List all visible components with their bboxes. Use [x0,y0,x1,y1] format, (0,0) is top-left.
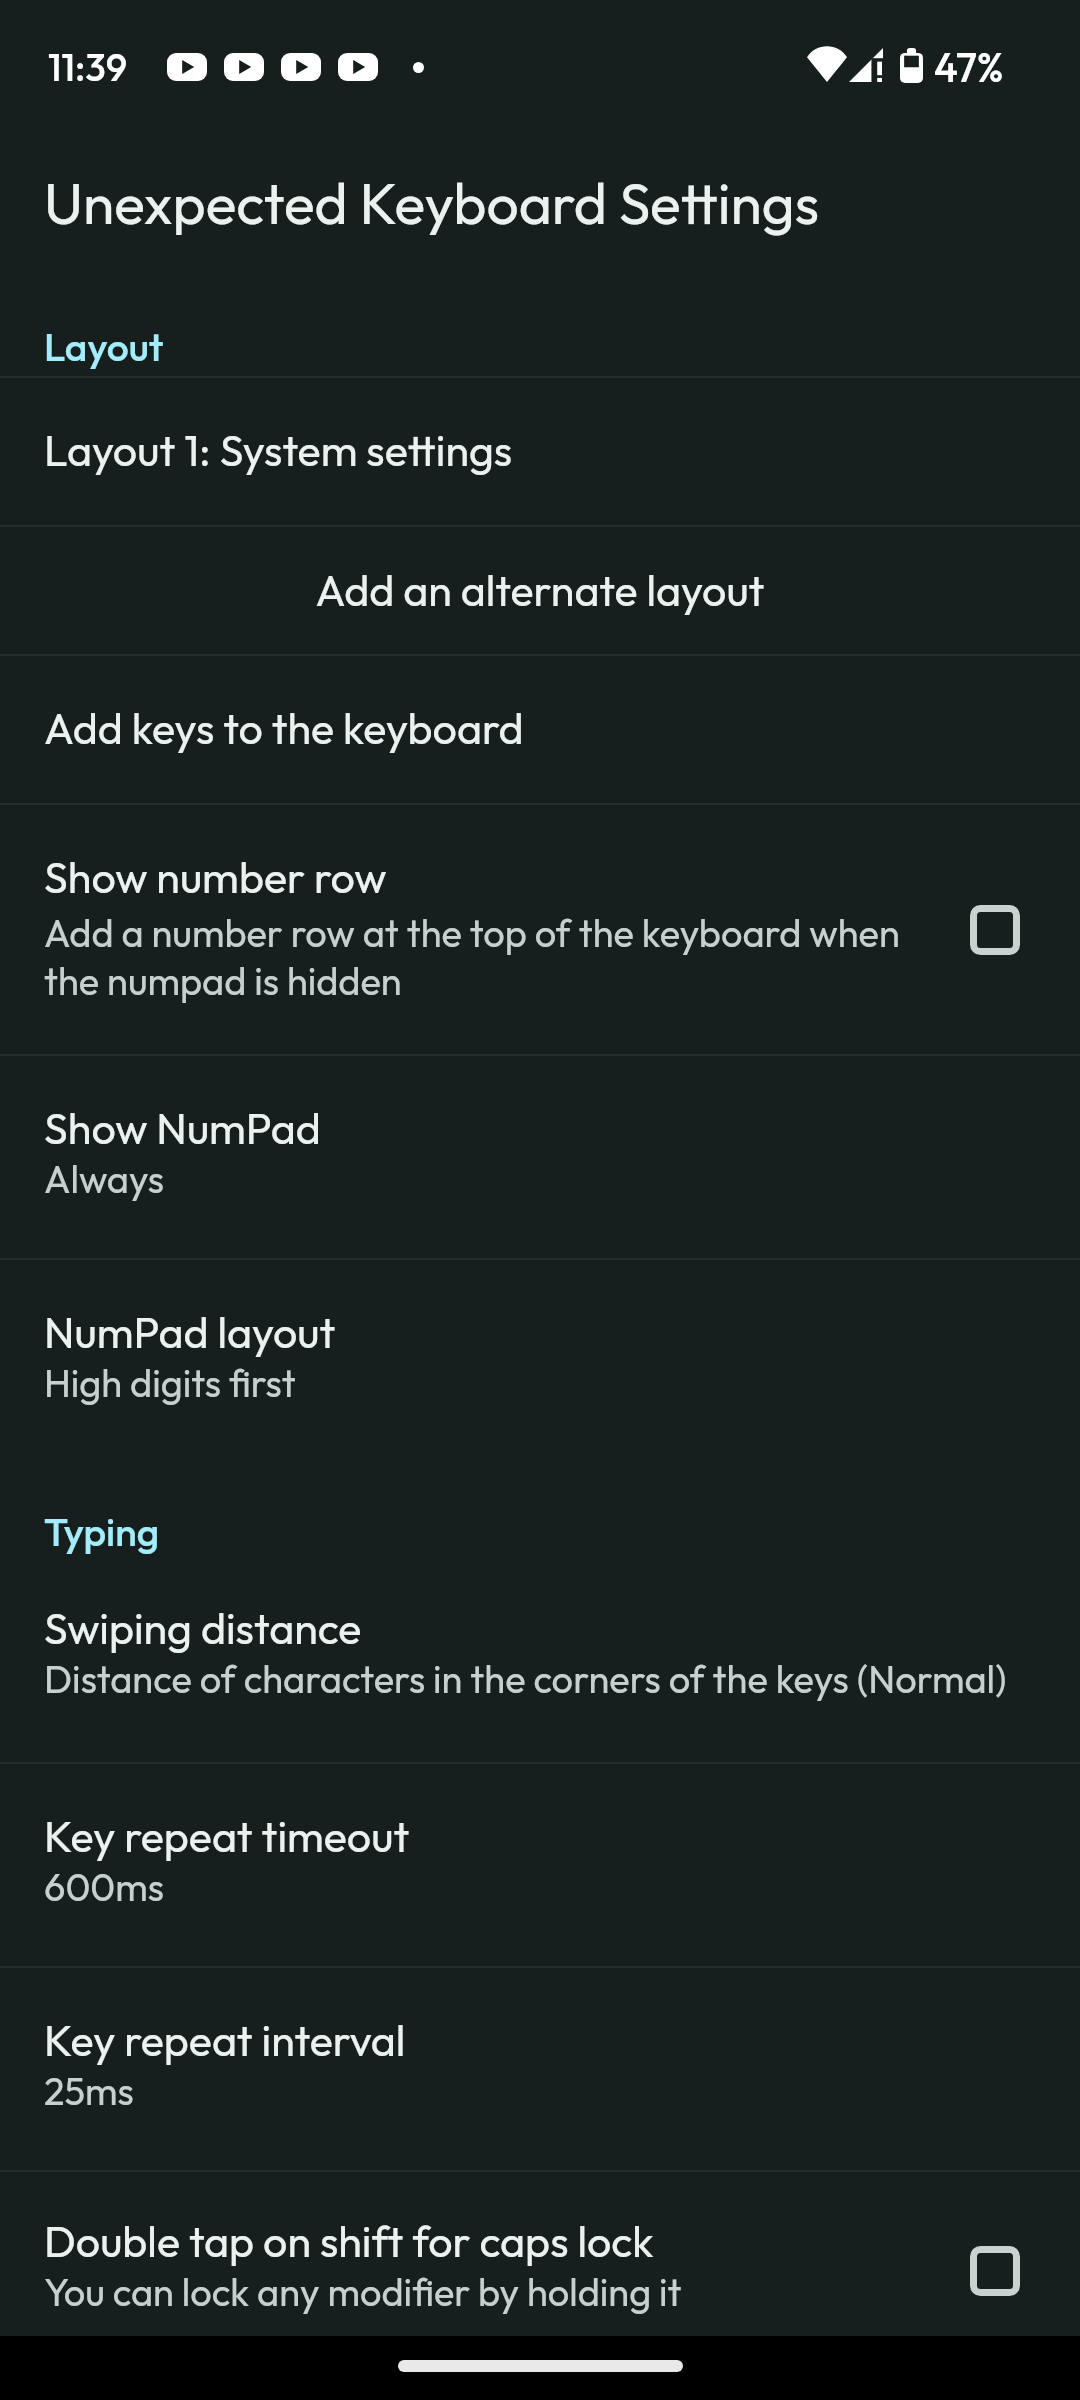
staticText: You can lock any modifier by holding it [44,2268,682,2316]
button[interactable]: Double tap on shift for caps lock [940,2216,1050,2326]
button[interactable]: Swiping distance [0,1556,1080,1762]
staticText: Layout [44,322,164,371]
staticText: 47% [934,42,1004,92]
staticText: Double tap on shift for caps lock [44,2214,654,2268]
button[interactable]: Show number row [940,875,1050,985]
staticText: Typing [44,1507,160,1556]
staticText: High digits first [44,1359,296,1407]
button[interactable]: Key repeat timeout [0,1764,1080,1966]
staticText: 25ms [44,2067,134,2115]
staticText: Always [44,1155,165,1203]
staticText: 11:39 [48,43,128,91]
button[interactable]: Key repeat interval [0,1968,1080,2170]
staticText: Add a number row at the top of the keybo… [44,909,960,1005]
staticText: 600ms [44,1863,165,1911]
staticText: Show NumPad [44,1101,321,1155]
button[interactable]: Double tap on shift for caps lock [0,2172,1080,2336]
staticText: Layout 1: System settings [44,423,513,477]
staticText: Key repeat timeout [44,1809,410,1863]
button[interactable]: Show number row [0,805,1080,1054]
staticText: Add an alternate layout [44,563,1036,617]
staticText: Show number row [44,850,387,904]
staticText: NumPad layout [44,1305,336,1359]
staticText: Unexpected Keyboard Settings [44,167,820,239]
button[interactable]: Show NumPad [0,1056,1080,1258]
staticText: Distance of characters in the corners of… [44,1655,1007,1703]
button[interactable]: NumPad layout [0,1260,1080,1464]
button[interactable]: Add keys to the keyboard [0,656,1080,803]
staticText: Add keys to the keyboard [44,701,524,755]
button[interactable]: Add an alternate layout [0,527,1080,654]
staticText: Key repeat interval [44,2013,406,2067]
button[interactable]: Layout 1: System settings [0,378,1080,525]
staticText: Swiping distance [44,1601,362,1655]
